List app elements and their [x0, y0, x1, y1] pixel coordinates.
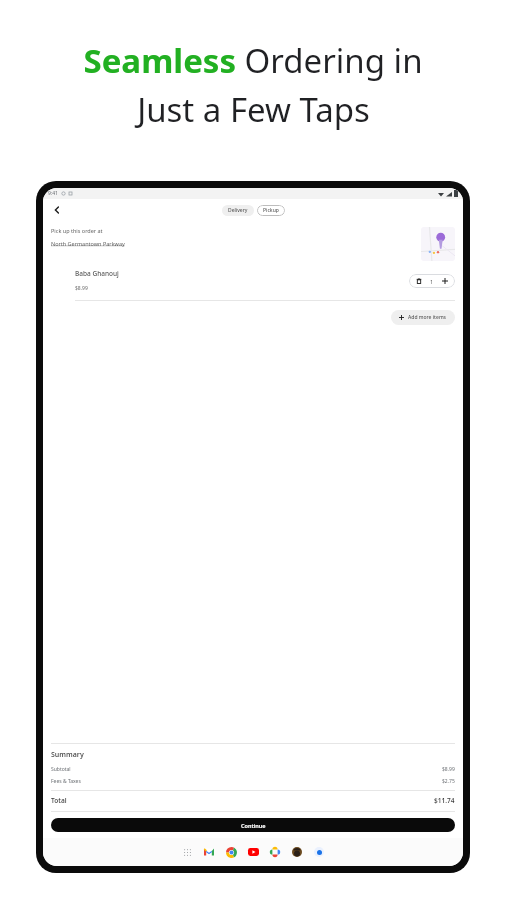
- button[interactable]: Assistant: [313, 846, 325, 858]
- staticText: Baba Ghanouj: [75, 269, 119, 278]
- staticText: $11.74: [434, 796, 455, 805]
- button[interactable]: Gmail: [203, 846, 215, 858]
- staticText: Fees & Taxes: [51, 778, 81, 785]
- staticText: Pick up this order at: [51, 227, 103, 234]
- staticText: Total: [51, 796, 67, 805]
- button[interactable]: Map: [421, 227, 455, 261]
- button[interactable]: Back: [49, 202, 65, 218]
- button[interactable]: Add one: [441, 277, 449, 285]
- staticText: Seamless Ordering in: [83, 38, 423, 83]
- staticText: Pickup: [263, 207, 279, 214]
- staticText: $8.99: [442, 766, 455, 773]
- button[interactable]: All apps: [181, 846, 193, 858]
- button[interactable]: Add more items: [391, 310, 455, 325]
- button[interactable]: Pickup: [257, 205, 285, 216]
- button[interactable]: Remove item: [409, 274, 455, 288]
- button[interactable]: Delivery: [222, 205, 254, 216]
- staticText: Subtotal: [51, 766, 71, 773]
- button[interactable]: Profile: [291, 846, 303, 858]
- button[interactable]: Photos: [269, 846, 281, 858]
- staticText: 9:41: [48, 190, 58, 197]
- staticText: Summary: [51, 750, 84, 760]
- staticText: Add more items: [408, 314, 447, 321]
- staticText: Continue: [241, 822, 266, 829]
- button[interactable]: Remove item: [415, 277, 423, 285]
- staticText: Delivery: [228, 207, 248, 214]
- staticText: Just a Few Taps: [137, 87, 370, 132]
- button[interactable]: YouTube: [247, 846, 259, 858]
- staticText: 1: [430, 278, 434, 285]
- staticText: $8.99: [75, 285, 88, 292]
- staticText: $2.75: [442, 778, 455, 785]
- button[interactable]: Baba Ghanouj: [43, 269, 463, 292]
- button[interactable]: Continue: [51, 818, 455, 832]
- button[interactable]: Chrome: [225, 846, 237, 858]
- button[interactable]: North Germantown Parkway: [51, 240, 125, 247]
